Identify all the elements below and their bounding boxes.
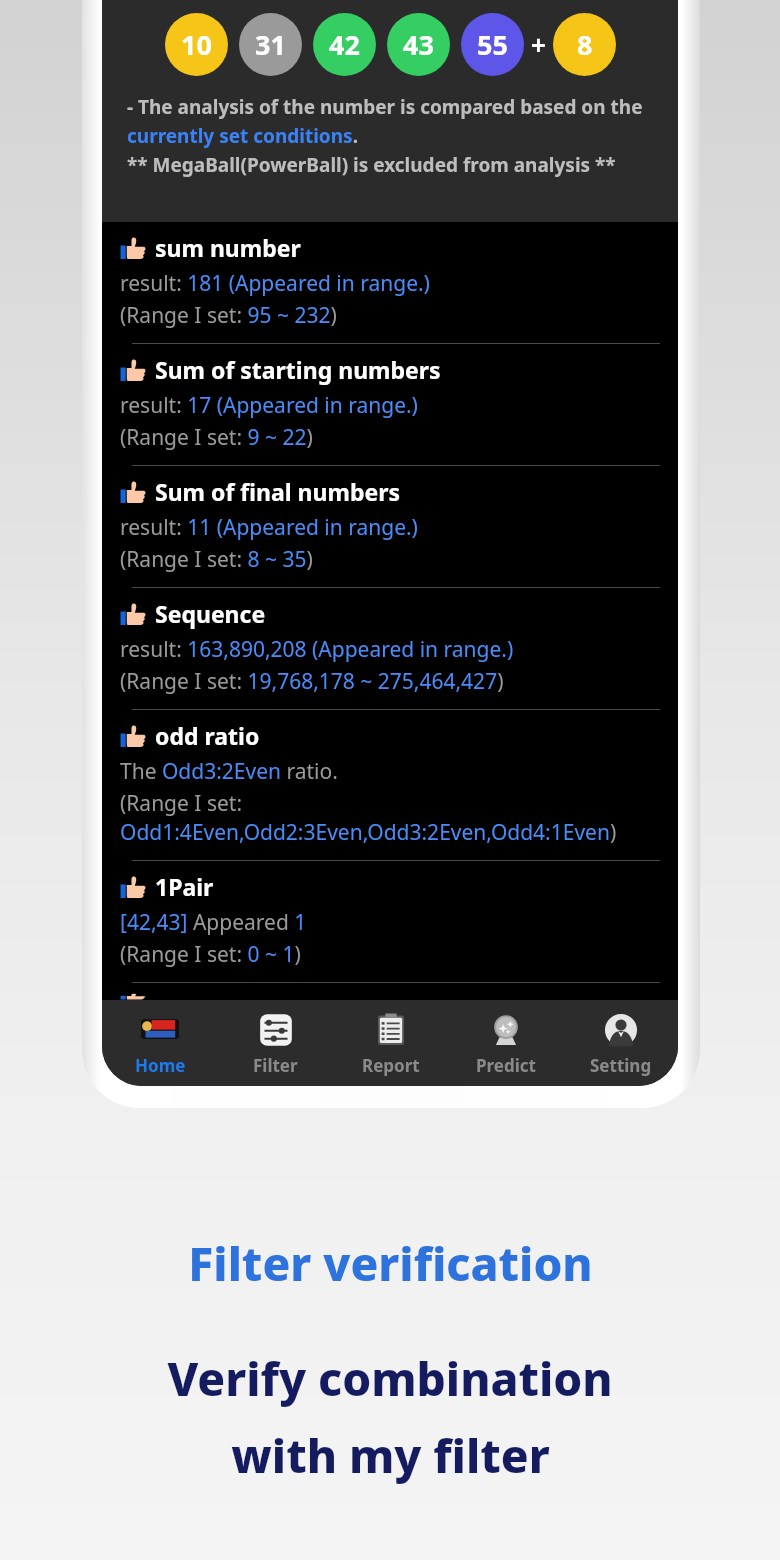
staticText: with my filter [231, 1424, 550, 1487]
staticText: (Range I set: 0 ~ 1) [120, 940, 301, 969]
button[interactable]: 10 [165, 13, 228, 76]
button[interactable]: 55 [461, 13, 524, 76]
staticText: (Range I set: 8 ~ 35) [120, 545, 313, 574]
button[interactable]: 2Pair [102, 983, 678, 1000]
button[interactable]: Report [333, 1002, 448, 1085]
staticText: Home [135, 1054, 186, 1077]
staticText: Filter verification [188, 1232, 593, 1295]
staticText: Filter [253, 1054, 298, 1077]
button[interactable]: sum number [102, 222, 678, 344]
button[interactable]: 42 [313, 13, 376, 76]
staticText: Sequence [155, 598, 266, 629]
button[interactable]: Home [102, 1002, 218, 1085]
button[interactable]: Filter [218, 1002, 333, 1085]
staticText: Verify combination [167, 1347, 613, 1410]
button[interactable]: odd ratio [102, 710, 678, 861]
button[interactable]: Predict [448, 1002, 563, 1085]
staticText: 55 [477, 26, 508, 63]
staticText: [42,43] Appeared 1 [120, 908, 307, 937]
staticText: currently set conditions. [127, 123, 358, 149]
button[interactable]: Sequence [102, 588, 678, 710]
staticText: (Range I set: Odd1:4Even,Odd2:3Even,Odd3… [120, 789, 617, 847]
button[interactable]: Setting [563, 1002, 678, 1085]
staticText: result: 17 (Appeared in range.) [120, 391, 418, 420]
staticText: 10 [181, 26, 212, 63]
staticText: - The analysis of the number is compared… [127, 94, 643, 120]
staticText: Setting [590, 1054, 652, 1077]
staticText: 31 [255, 26, 286, 63]
staticText: Sum of starting numbers [155, 354, 441, 385]
staticText: Report [362, 1054, 420, 1077]
staticText: + [531, 27, 546, 62]
staticText: Predict [476, 1054, 536, 1077]
staticText: result: 11 (Appeared in range.) [120, 513, 418, 542]
staticText: (Range I set: 95 ~ 232) [120, 301, 337, 330]
staticText: 42 [329, 26, 360, 63]
staticText: The Odd3:2Even ratio. [120, 757, 338, 786]
button[interactable]: Sum of starting numbers [102, 344, 678, 466]
button[interactable]: 8 [553, 13, 616, 76]
staticText: (Range I set: 9 ~ 22) [120, 423, 313, 452]
staticText: 1Pair [155, 871, 214, 902]
button[interactable]: 43 [387, 13, 450, 76]
staticText: result: 181 (Appeared in range.) [120, 269, 430, 298]
staticText: 43 [403, 26, 434, 63]
button[interactable]: Sum of final numbers [102, 466, 678, 588]
button[interactable]: 31 [239, 13, 302, 76]
staticText: ** MegaBall(PowerBall) is excluded from … [127, 152, 616, 178]
staticText: 8 [577, 26, 593, 63]
staticText: sum number [155, 232, 301, 263]
staticText: (Range I set: 19,768,178 ~ 275,464,427) [120, 667, 504, 696]
staticText: Sum of final numbers [155, 476, 401, 507]
staticText: result: 163,890,208 (Appeared in range.) [120, 635, 514, 664]
staticText: odd ratio [155, 720, 260, 751]
button[interactable]: 1Pair [102, 861, 678, 983]
